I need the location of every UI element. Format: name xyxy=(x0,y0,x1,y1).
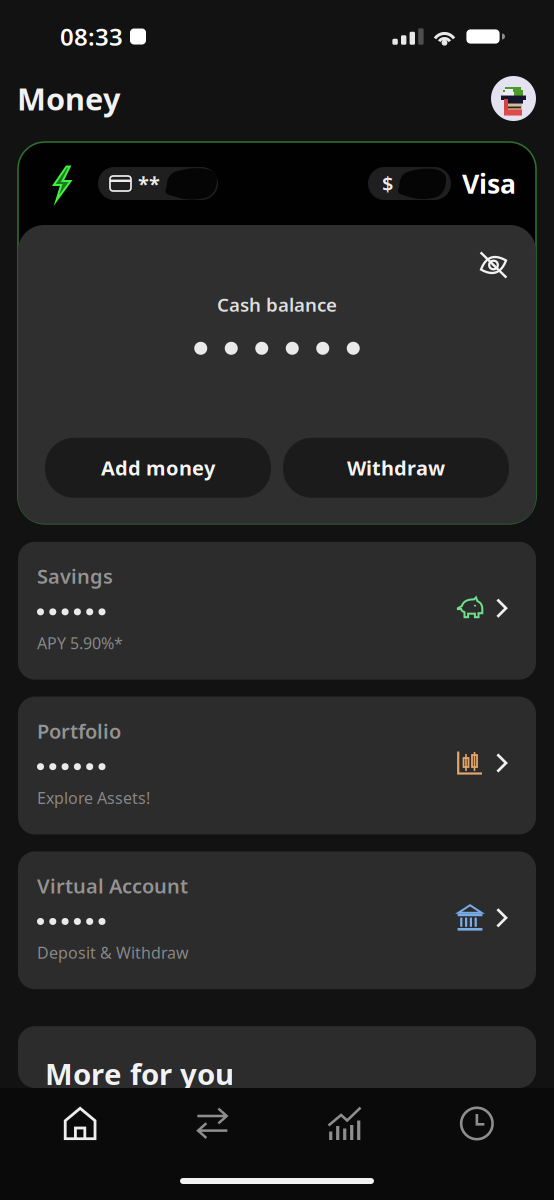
button[interactable]: Hide balance xyxy=(479,251,508,279)
button[interactable]: Transfer xyxy=(146,1107,278,1140)
staticText: Money xyxy=(17,78,121,119)
staticText: Visa xyxy=(462,166,516,201)
button[interactable]: Virtual Account xyxy=(18,851,536,989)
button[interactable]: Add money xyxy=(45,438,271,498)
button[interactable]: History xyxy=(411,1106,543,1140)
staticText: Explore Assets! xyxy=(37,787,150,808)
staticText: Savings xyxy=(37,563,113,589)
staticText: $ xyxy=(382,170,393,197)
button[interactable]: Withdraw xyxy=(283,438,509,498)
staticText: Portfolio xyxy=(37,718,121,744)
staticText: ** xyxy=(138,170,160,197)
staticText: APY 5.90%* xyxy=(37,632,123,653)
staticText: Deposit & Withdraw xyxy=(37,942,189,963)
staticText: Cash balance xyxy=(217,292,337,317)
staticText: 08:33 xyxy=(60,21,123,52)
button[interactable]: Invest xyxy=(278,1106,411,1141)
button[interactable]: Portfolio xyxy=(18,697,536,834)
button[interactable]: Savings xyxy=(18,542,536,680)
staticText: Withdraw xyxy=(347,454,445,481)
button[interactable]: Home xyxy=(14,1106,146,1140)
button[interactable]: Profile xyxy=(491,76,536,121)
staticText: Add money xyxy=(101,454,215,481)
staticText: More for you xyxy=(45,1054,234,1093)
staticText: Virtual Account xyxy=(37,872,188,899)
